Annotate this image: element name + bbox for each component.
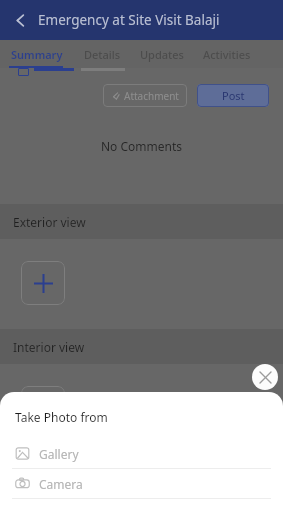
button[interactable]: Close (252, 364, 278, 390)
button[interactable]: Details (82, 44, 123, 65)
staticText: Exterior view (13, 214, 86, 230)
button[interactable]: Gallery (0, 439, 283, 468)
staticText: Updates (140, 47, 184, 62)
button[interactable]: Camera (0, 469, 283, 498)
staticText: Take Photo from (15, 409, 108, 425)
staticText: Gallery (39, 446, 79, 462)
staticText: Interior view (13, 339, 85, 355)
button[interactable]: Add photo (21, 261, 65, 305)
staticText: No Comments (101, 138, 183, 154)
button[interactable]: Summary (9, 44, 65, 65)
button[interactable]: Updates (138, 44, 186, 65)
button[interactable]: Add photo (21, 386, 65, 430)
staticText: Activities (203, 47, 251, 62)
staticText: Camera (39, 476, 83, 492)
staticText: Details (84, 47, 121, 62)
button[interactable]: Attachment (103, 84, 187, 107)
staticText: Summary (11, 47, 63, 62)
button[interactable]: Back (6, 6, 34, 34)
button[interactable]: Activities (201, 44, 253, 65)
staticText: Attachment (124, 89, 179, 103)
staticText: Post (222, 88, 245, 103)
button[interactable]: Post (197, 84, 269, 107)
staticText: Emergency at Site Visit Balaji (38, 11, 220, 29)
